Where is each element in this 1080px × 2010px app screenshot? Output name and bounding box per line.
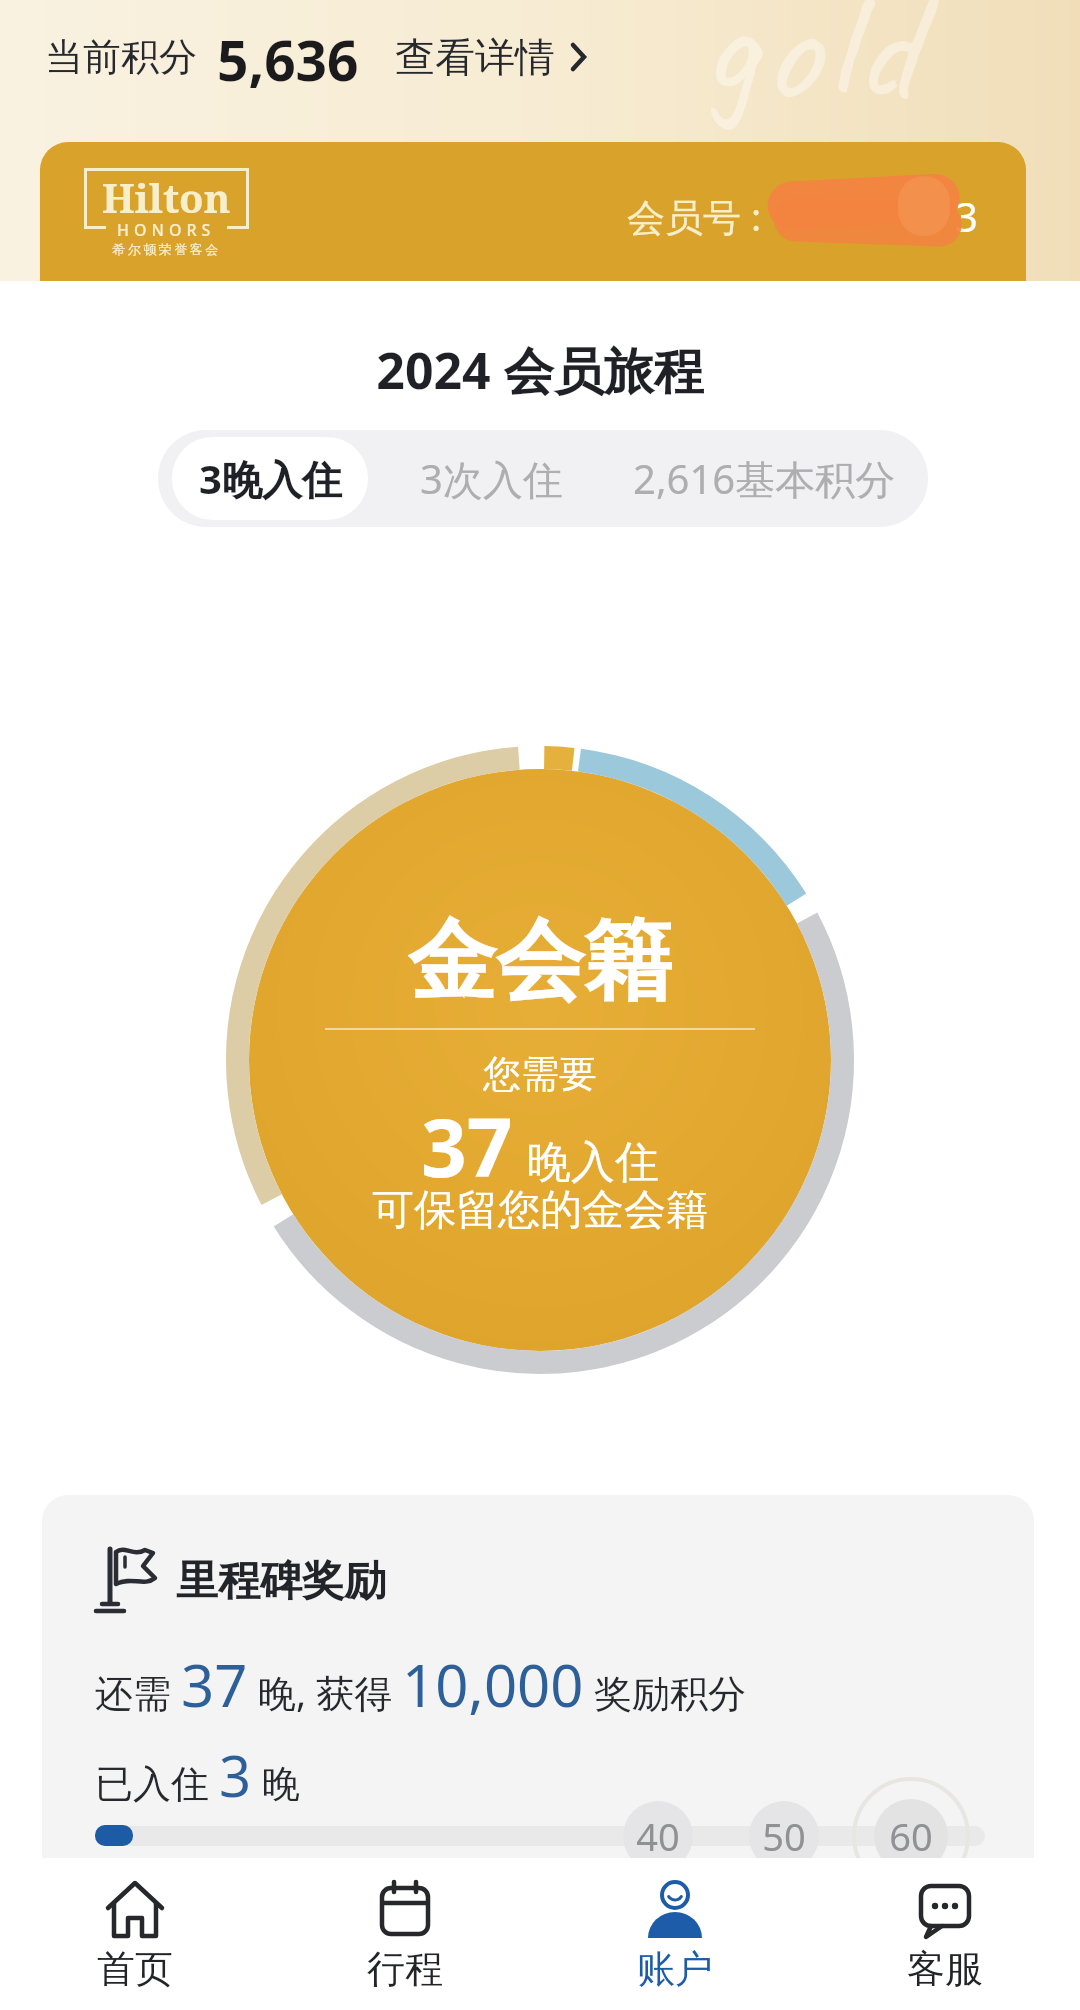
- staticText: 10,000: [402, 1645, 584, 1724]
- staticText: Hilton: [102, 170, 231, 224]
- staticText: 已入住: [95, 1756, 219, 1808]
- staticText: 查看详情: [395, 32, 555, 82]
- button[interactable]: [42, 1495, 1034, 1880]
- staticText: 账户: [637, 1945, 713, 1993]
- staticText: 会员号 :: [627, 190, 762, 242]
- staticText: 3晚入住: [199, 451, 342, 506]
- staticText: 50: [762, 1810, 806, 1862]
- staticText: 首页: [97, 1945, 173, 1993]
- button[interactable]: 行程: [270, 1858, 540, 2010]
- button[interactable]: 2,616基本积分: [614, 437, 914, 520]
- button[interactable]: 3晚入住: [172, 437, 368, 520]
- staticText: 2024 会员旅程: [376, 336, 704, 396]
- staticText: 您需要: [483, 1050, 597, 1096]
- staticText: 行程: [367, 1945, 443, 1993]
- staticText: 37: [421, 1091, 513, 1181]
- staticText: 3次入住: [420, 451, 563, 506]
- staticText: 还需: [95, 1666, 181, 1718]
- staticText: 可保留您的金会籍: [372, 1184, 708, 1234]
- button[interactable]: 3次入住: [368, 437, 614, 520]
- staticText: gold: [700, 0, 924, 147]
- button[interactable]: 客服: [810, 1858, 1080, 2010]
- staticText: 3: [219, 1737, 252, 1813]
- staticText: 客服: [907, 1945, 983, 1993]
- staticText: 5,636: [217, 22, 359, 92]
- staticText: 晚: [252, 1756, 300, 1808]
- staticText: 晚, 获得: [248, 1666, 402, 1718]
- staticText: 37: [181, 1645, 248, 1724]
- button[interactable]: 账户: [540, 1858, 810, 2010]
- staticText: 40: [636, 1810, 680, 1862]
- button[interactable]: 首页: [0, 1858, 270, 2010]
- staticText: 里程碑奖励: [176, 1555, 386, 1608]
- staticText: 2,616基本积分: [633, 451, 896, 506]
- staticText: 当前积分: [45, 33, 197, 81]
- staticText: 晚入住: [527, 1135, 659, 1190]
- staticText: 60: [889, 1810, 933, 1862]
- staticText: 金会籍: [408, 906, 672, 1016]
- staticText: 奖励积分: [584, 1666, 746, 1718]
- staticText: 希尔顿荣誉客会: [112, 241, 221, 257]
- staticText: HONORS: [117, 219, 216, 239]
- button[interactable]: 当前积分: [45, 22, 587, 92]
- staticText: 3: [955, 189, 978, 243]
- button[interactable]: Hilton: [40, 142, 1026, 281]
